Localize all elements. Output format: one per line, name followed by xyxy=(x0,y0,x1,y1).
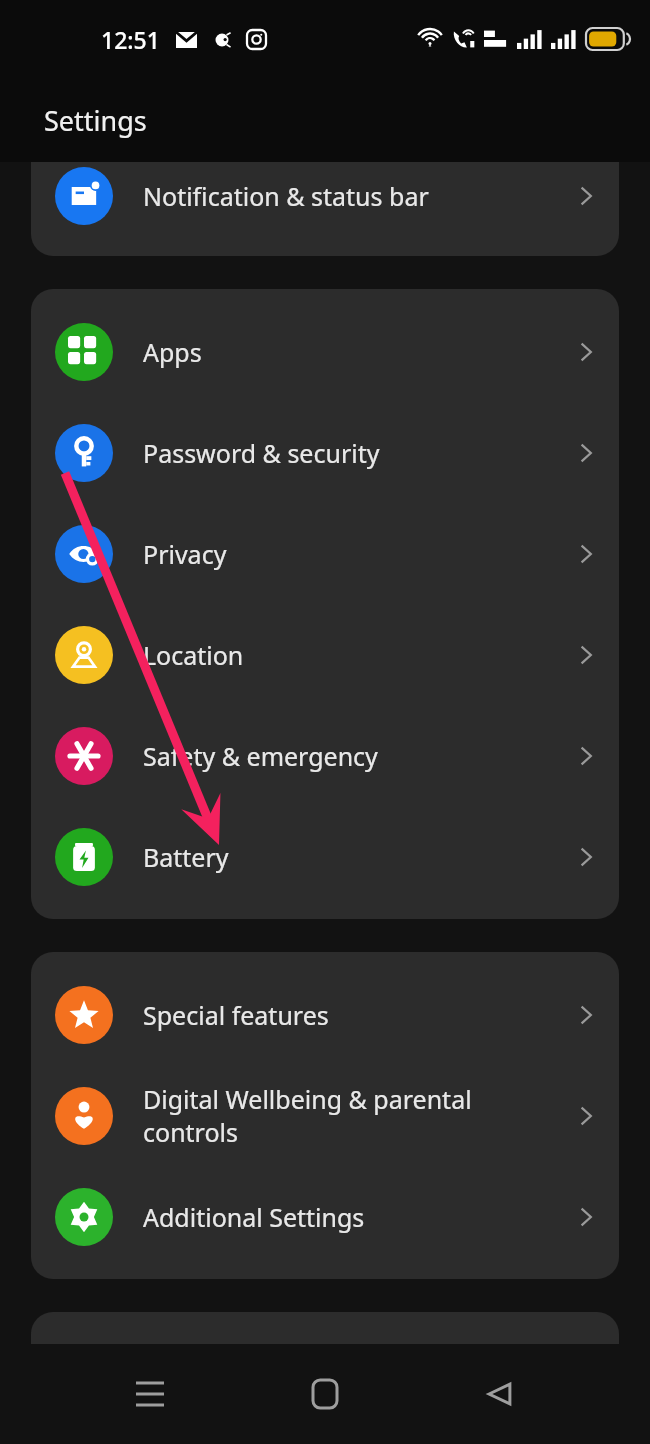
staticText: Apps xyxy=(143,335,559,369)
staticText: Notification & status bar xyxy=(143,179,559,213)
staticText: Privacy xyxy=(143,537,559,571)
button[interactable]: Home xyxy=(295,1364,355,1424)
button[interactable]: Back xyxy=(470,1364,530,1424)
staticText: Digital Wellbeing & parental controls xyxy=(143,1082,559,1149)
staticText: Additional Settings xyxy=(143,1200,559,1234)
button[interactable]: Location xyxy=(31,604,619,705)
button[interactable]: Privacy xyxy=(31,503,619,604)
staticText: Battery xyxy=(143,840,559,874)
button[interactable]: Password & security xyxy=(31,402,619,503)
staticText: Special features xyxy=(143,998,559,1032)
staticText: Settings xyxy=(44,102,147,139)
button[interactable]: Special features xyxy=(31,964,619,1065)
button[interactable]: Digital Wellbeing & parental controls xyxy=(31,1065,619,1166)
button[interactable]: Additional Settings xyxy=(31,1166,619,1267)
button[interactable]: Safety & emergency xyxy=(31,705,619,806)
staticText: Location xyxy=(143,638,559,672)
button[interactable]: Apps xyxy=(31,301,619,402)
staticText: Password & security xyxy=(143,436,559,470)
staticText: Safety & emergency xyxy=(143,739,559,773)
staticText: 12:51 xyxy=(101,24,160,55)
button[interactable]: Notification & status bar xyxy=(31,162,619,230)
button[interactable]: Recent apps xyxy=(120,1364,180,1424)
button[interactable]: Battery xyxy=(31,806,619,907)
